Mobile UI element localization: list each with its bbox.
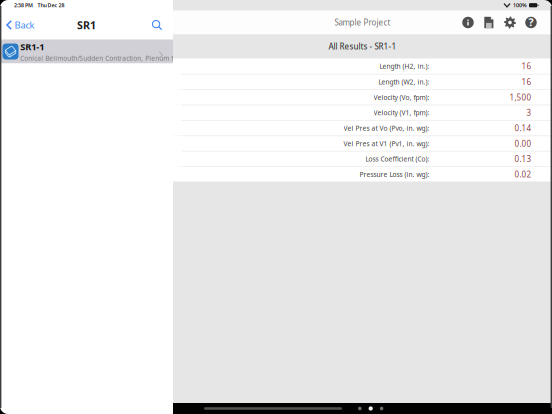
staticText: 2:38 PM bbox=[14, 2, 33, 9]
staticText: All Results - SR1-1 bbox=[328, 41, 396, 52]
staticText: SR1-1 bbox=[20, 40, 44, 53]
staticText: Length (H2, in.): bbox=[379, 62, 429, 71]
staticText: Thu Dec 28 bbox=[37, 2, 64, 9]
button[interactable]: Help bbox=[524, 12, 538, 32]
staticText: ? bbox=[528, 15, 533, 29]
staticText: 100% bbox=[513, 2, 527, 9]
staticText: 0.13 bbox=[514, 154, 531, 164]
staticText: Length (W2, in.): bbox=[378, 77, 429, 86]
button[interactable]: Information bbox=[461, 12, 475, 32]
staticText: 16 bbox=[521, 61, 531, 71]
staticText: 16 bbox=[521, 77, 531, 87]
staticText: 0.02 bbox=[514, 169, 531, 180]
button[interactable]: Save document bbox=[482, 12, 496, 32]
staticText: SR1 bbox=[77, 18, 96, 32]
staticText: 0.00 bbox=[514, 138, 531, 149]
staticText: Velocity (V1, fpm): bbox=[373, 108, 429, 117]
button[interactable]: Search bbox=[145, 10, 173, 39]
staticText: Sample Project bbox=[334, 17, 390, 28]
staticText: Vel Pres at V1 (Pv1, in. wg): bbox=[343, 139, 429, 148]
button[interactable]: Back bbox=[0, 10, 40, 39]
staticText: 1,500 bbox=[509, 92, 531, 103]
staticText: Back bbox=[15, 19, 35, 31]
staticText: 3 bbox=[526, 107, 531, 118]
button[interactable]: Settings bbox=[503, 12, 517, 32]
button[interactable]: SR1-1 bbox=[0, 39, 173, 63]
staticText: 0.14 bbox=[514, 123, 531, 133]
staticText: Loss Coefficient (Co): bbox=[365, 154, 429, 163]
staticText: Pressure Loss (in. wg): bbox=[359, 170, 429, 179]
staticText: Vel Pres at Vo (Pvo, in. wg): bbox=[343, 124, 429, 133]
staticText: Velocity (Vo, fpm): bbox=[373, 93, 429, 102]
staticText: Conical Bellmouth/Sudden Contraction, Pl… bbox=[20, 54, 177, 63]
